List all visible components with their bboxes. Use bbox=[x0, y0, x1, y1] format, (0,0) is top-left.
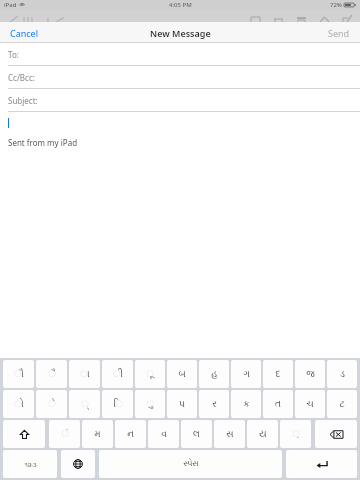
button[interactable]: Cc/Bcc: bbox=[0, 66, 360, 89]
staticText: ુ bbox=[146, 400, 154, 409]
staticText: ં bbox=[61, 430, 69, 439]
staticText: New Message bbox=[150, 27, 211, 39]
button[interactable]: Send bbox=[318, 24, 360, 42]
staticText: ન bbox=[127, 430, 134, 439]
staticText: ગ bbox=[243, 370, 250, 379]
button[interactable]: Return bbox=[286, 450, 357, 478]
button[interactable]: ટ bbox=[327, 390, 357, 418]
staticText: લ bbox=[193, 430, 200, 439]
button[interactable]: To: bbox=[0, 43, 360, 66]
button[interactable]: ક bbox=[231, 390, 261, 418]
staticText: ડ bbox=[340, 370, 345, 379]
button[interactable]: જ bbox=[295, 360, 325, 388]
button[interactable]: Subject: bbox=[0, 89, 360, 112]
staticText: ૌ bbox=[14, 370, 24, 379]
button[interactable]: લ bbox=[181, 420, 212, 448]
staticText: હ bbox=[211, 370, 218, 379]
button[interactable]: મ bbox=[82, 420, 113, 448]
staticText: બ bbox=[178, 370, 186, 379]
button[interactable]: ૧૨૩ bbox=[3, 450, 57, 478]
staticText: સ્પેસ bbox=[183, 460, 199, 468]
staticText: ઼ bbox=[292, 430, 300, 439]
staticText: Subject: bbox=[8, 95, 38, 106]
button[interactable]: દ bbox=[263, 360, 293, 388]
staticText: Cc/Bcc: bbox=[8, 72, 35, 83]
staticText: દ bbox=[275, 370, 281, 379]
button[interactable]: બ bbox=[167, 360, 197, 388]
staticText: ૈ bbox=[48, 370, 56, 379]
button[interactable]: વ bbox=[148, 420, 179, 448]
button[interactable]: સ્પેસ bbox=[99, 450, 282, 478]
button[interactable]: Backspace bbox=[315, 420, 357, 448]
button[interactable]: ૂ bbox=[135, 360, 165, 388]
button[interactable]: ઼ bbox=[280, 420, 311, 448]
staticText: ટ bbox=[339, 400, 345, 409]
staticText: ય bbox=[259, 430, 267, 439]
staticText: ો bbox=[14, 400, 24, 409]
button[interactable]: ે bbox=[36, 390, 67, 418]
button[interactable]: Shift bbox=[3, 420, 45, 448]
staticText: ા bbox=[80, 370, 90, 379]
staticText: ્ bbox=[81, 400, 89, 409]
button[interactable]: ્ bbox=[69, 390, 100, 418]
button[interactable]: પ bbox=[167, 390, 197, 418]
staticText: Sent from my iPad bbox=[8, 137, 78, 148]
staticText: ર bbox=[212, 400, 217, 409]
staticText: ક bbox=[243, 400, 250, 409]
button[interactable]: હ bbox=[199, 360, 229, 388]
button[interactable]: Switch keyboard bbox=[61, 450, 95, 478]
button[interactable]: ો bbox=[3, 390, 34, 418]
staticText: ચ bbox=[306, 400, 314, 409]
button[interactable]: ી bbox=[102, 360, 133, 388]
staticText: Cancel bbox=[10, 27, 39, 39]
button[interactable]: ં bbox=[49, 420, 80, 448]
staticText: િ bbox=[113, 400, 123, 409]
staticText: પ bbox=[179, 400, 185, 409]
staticText: સ bbox=[226, 430, 234, 439]
button[interactable]: ર bbox=[199, 390, 229, 418]
staticText: ત bbox=[275, 400, 281, 409]
staticText: To: bbox=[8, 49, 19, 60]
staticText: ૧૨૩ bbox=[24, 461, 37, 468]
button[interactable]: ત bbox=[263, 390, 293, 418]
button[interactable]: ન bbox=[115, 420, 146, 448]
button[interactable]: ૈ bbox=[36, 360, 67, 388]
button[interactable]: Cancel bbox=[0, 24, 49, 42]
staticText: iPad bbox=[4, 1, 17, 9]
staticText: વ bbox=[161, 430, 167, 439]
button[interactable]: ુ bbox=[135, 390, 165, 418]
staticText: 4:05 PM bbox=[169, 1, 192, 9]
button[interactable]: ડ bbox=[327, 360, 357, 388]
staticText: 72% bbox=[330, 1, 342, 9]
button[interactable]: Sent from my iPad bbox=[0, 112, 360, 148]
staticText: Send bbox=[328, 27, 350, 39]
button[interactable]: ૌ bbox=[3, 360, 34, 388]
staticText: મ bbox=[94, 430, 101, 439]
button[interactable]: િ bbox=[102, 390, 133, 418]
staticText: ી bbox=[113, 370, 123, 379]
staticText: ે bbox=[48, 400, 56, 409]
button[interactable]: ચ bbox=[295, 390, 325, 418]
button[interactable]: ય bbox=[247, 420, 278, 448]
button[interactable]: ા bbox=[69, 360, 100, 388]
button[interactable]: સ bbox=[214, 420, 245, 448]
button[interactable]: ગ bbox=[231, 360, 261, 388]
staticText: ૂ bbox=[146, 370, 154, 379]
staticText: જ bbox=[306, 370, 315, 379]
